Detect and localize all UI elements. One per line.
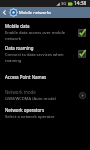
staticText: Enable data access over mobile network <box>5 30 66 41</box>
staticText: Mobile data <box>5 23 30 29</box>
button[interactable]: Mobile data <box>76 26 88 38</box>
staticText: Connect to data services when roaming <box>5 52 64 63</box>
button[interactable]: Network operators <box>0 107 90 128</box>
staticText: GSM/WCDMA (Auto mode) <box>5 96 56 102</box>
button[interactable]: Access Point Names <box>0 74 90 89</box>
button[interactable]: Back <box>0 7 9 18</box>
staticText: Mobile networks <box>19 10 52 16</box>
staticText: Network mode <box>5 89 36 95</box>
staticText: Data roaming <box>5 45 34 51</box>
staticText: 14:38 <box>74 0 87 7</box>
button[interactable]: Network mode <box>76 89 88 101</box>
button[interactable]: Network mode <box>0 89 90 110</box>
button[interactable]: Data roaming <box>76 47 88 59</box>
staticText: Network operators <box>5 107 44 113</box>
button[interactable]: Data roaming <box>0 45 90 72</box>
staticText: Select a network operator <box>5 114 55 120</box>
staticText: 3G <box>61 1 67 6</box>
button[interactable]: Mobile data <box>0 23 90 45</box>
staticText: Access Point Names <box>5 74 47 80</box>
